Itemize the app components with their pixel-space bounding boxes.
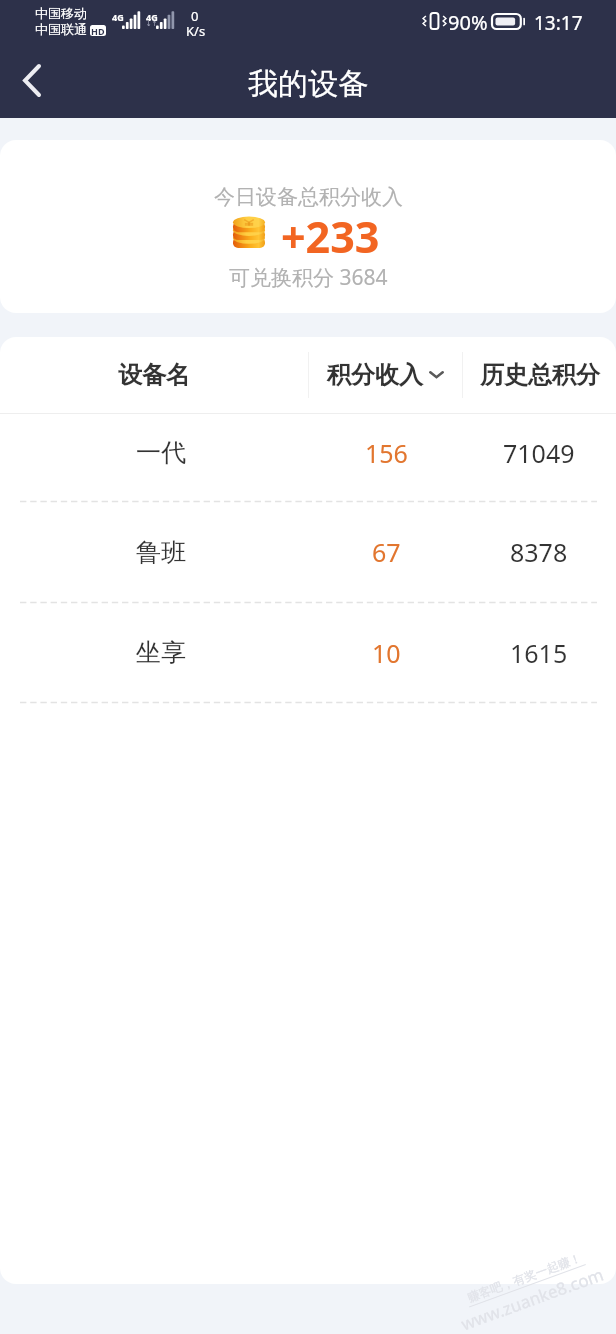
staticText: 10	[372, 636, 401, 670]
staticText: 71049	[503, 436, 575, 470]
staticText: 4G	[112, 11, 124, 23]
staticText: 可兑换积分 3684	[229, 263, 388, 292]
staticText: +233	[281, 207, 380, 266]
staticText: www.zuanke8.com	[458, 1262, 607, 1334]
button[interactable]: 坐享	[0, 603, 616, 702]
button[interactable]: Back	[0, 48, 64, 112]
staticText: 90%	[448, 9, 488, 36]
button[interactable]: 一代	[0, 414, 616, 501]
staticText: 67	[372, 535, 401, 569]
staticText: 1615	[510, 636, 568, 670]
staticText: 设备名	[118, 360, 190, 390]
button[interactable]: 鲁班	[0, 502, 616, 602]
staticText: 13:17	[534, 10, 583, 36]
staticText: 中国联通	[35, 21, 87, 37]
staticText: 今日设备总积分收入	[214, 184, 403, 210]
staticText: 中国移动	[35, 5, 87, 21]
staticText: K/s	[186, 22, 206, 40]
staticText: 坐享	[136, 637, 186, 668]
staticText: 赚客吧，有奖一起赚！	[465, 1250, 583, 1305]
staticText: 鲁班	[136, 537, 186, 568]
staticText: 历史总积分	[480, 360, 600, 390]
staticText: 0	[191, 7, 199, 25]
staticText: 4G	[146, 11, 158, 23]
staticText: ↓↑	[146, 20, 158, 28]
staticText: 一代	[136, 437, 186, 468]
staticText: 156	[365, 436, 408, 470]
staticText: 我的设备	[248, 65, 368, 103]
staticText: 积分收入	[327, 360, 423, 390]
staticText: 8378	[510, 535, 568, 569]
button[interactable]: 积分收入	[309, 337, 462, 413]
staticText: HD	[91, 25, 105, 36]
